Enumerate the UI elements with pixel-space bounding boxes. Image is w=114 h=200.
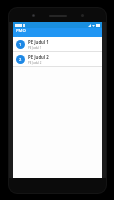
staticText: 1 xyxy=(19,42,22,47)
staticText: 2 xyxy=(19,57,22,62)
staticText: PE Judul 2 xyxy=(28,61,42,65)
staticText: PE Judul 2 xyxy=(28,54,49,60)
staticText: PMO xyxy=(16,28,26,34)
staticText: PE Judul 1 xyxy=(28,39,49,45)
button[interactable]: 1 xyxy=(13,37,102,51)
button[interactable]: 2 xyxy=(13,52,102,66)
staticText: PE Judul 1 xyxy=(28,46,42,50)
